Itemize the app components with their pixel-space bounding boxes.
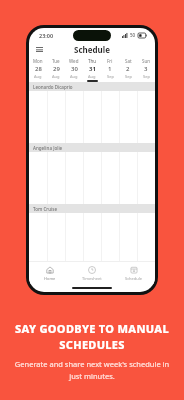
staticText: SAY GOODBYE TO MANUAL SCHEDULES <box>10 321 174 352</box>
staticText: Sep <box>143 74 150 79</box>
staticText: Sun <box>142 58 151 64</box>
staticText: 30 <box>71 65 78 73</box>
staticText: Aug <box>34 74 42 79</box>
button[interactable]: Home <box>29 262 71 284</box>
staticText: 23:00 <box>39 32 54 39</box>
button[interactable]: Angelina Jolie <box>29 143 155 152</box>
staticText: Tue <box>52 58 60 64</box>
button[interactable]: Timesheet <box>71 262 113 284</box>
staticText: Fri <box>107 58 113 64</box>
staticText: Sep <box>125 74 132 79</box>
staticText: Aug <box>70 74 78 79</box>
staticText: Timesheet <box>82 276 102 281</box>
button[interactable]: Sat <box>119 57 137 80</box>
button[interactable]: Schedule <box>113 262 155 284</box>
staticText: Generate and share next week's schedule … <box>10 359 174 382</box>
button[interactable]: Tue <box>47 57 65 80</box>
button[interactable]: Tom Cruise <box>29 204 155 213</box>
staticText: Schedule <box>74 44 110 55</box>
staticText: Tom Cruise <box>33 206 57 212</box>
button[interactable]: Sun <box>137 57 155 80</box>
button[interactable]: Mon <box>29 57 47 80</box>
staticText: Mon <box>33 58 43 64</box>
staticText: 50 <box>130 32 136 38</box>
staticText: Aug <box>88 74 96 79</box>
staticText: Wed <box>69 58 79 64</box>
staticText: 2 <box>126 65 130 73</box>
staticText: Aug <box>52 74 60 79</box>
staticText: Sep <box>107 74 114 79</box>
staticText: Thu <box>88 58 97 64</box>
button[interactable]: Leonardo Dicaprio <box>29 82 155 91</box>
staticText: Home <box>44 276 56 281</box>
button[interactable]: Fri <box>101 57 119 80</box>
staticText: Schedule <box>125 276 143 281</box>
staticText: Angelina Jolie <box>33 145 63 151</box>
staticText: 3 <box>144 65 148 73</box>
button[interactable]: Wed <box>65 57 83 80</box>
button[interactable]: Thu <box>83 57 101 80</box>
staticText: 31 <box>89 65 96 73</box>
staticText: 1 <box>108 65 112 73</box>
staticText: Leonardo Dicaprio <box>33 84 73 90</box>
staticText: 29 <box>53 65 60 73</box>
staticText: 28 <box>35 65 42 73</box>
staticText: Sat <box>125 58 132 64</box>
button[interactable]: Menu <box>34 44 45 55</box>
